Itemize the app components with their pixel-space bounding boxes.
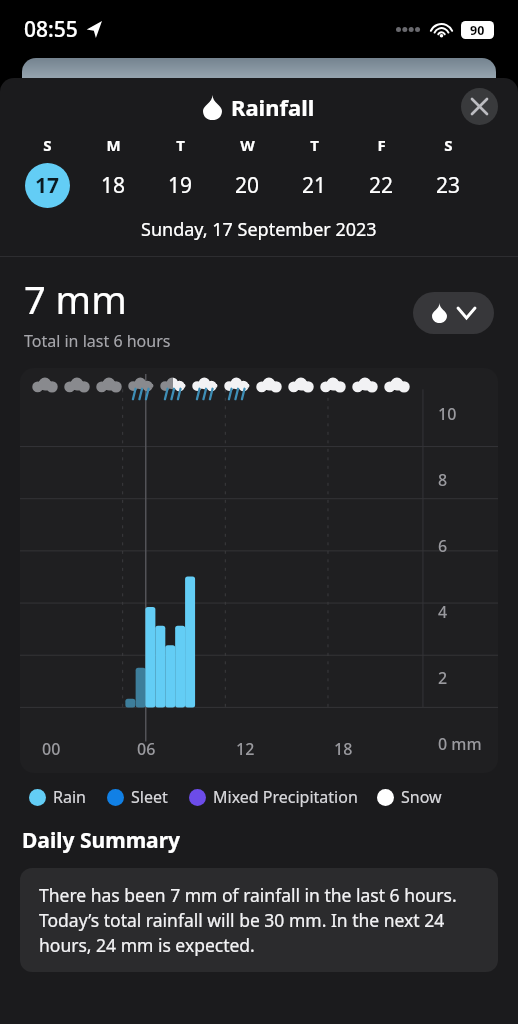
staticText: 8	[438, 469, 448, 491]
staticText: 08:55	[24, 15, 78, 44]
staticText: 2	[438, 667, 448, 689]
staticText: S	[444, 135, 453, 155]
staticText: 23	[436, 171, 461, 200]
staticText: 21	[302, 171, 327, 200]
staticText: Sunday, 17 September 2023	[141, 217, 377, 242]
staticText: F	[377, 135, 386, 155]
staticText: 18	[334, 738, 353, 760]
staticText: Daily Summary	[22, 826, 181, 855]
staticText: 20	[235, 171, 260, 200]
staticText: Sleet	[131, 786, 168, 808]
staticText: 90	[470, 22, 485, 39]
staticText: Total in last 6 hours	[24, 330, 171, 352]
staticText: T	[176, 135, 185, 155]
button[interactable]: Change precipitation type	[413, 292, 494, 334]
staticText: 06	[137, 738, 156, 760]
staticText: W	[240, 135, 255, 155]
button[interactable]: 20	[214, 163, 281, 208]
staticText: 10	[438, 403, 457, 425]
staticText: Snow	[401, 786, 442, 808]
staticText: There has been 7 mm of rainfall in the l…	[39, 883, 479, 957]
button[interactable]: Close	[461, 88, 498, 125]
staticText: 6	[438, 535, 448, 557]
staticText: 17	[35, 171, 60, 200]
staticText: 22	[369, 171, 394, 200]
staticText: 0 mm	[438, 733, 482, 755]
staticText: 18	[101, 171, 126, 200]
staticText: 4	[438, 601, 448, 623]
staticText: Rainfall	[231, 92, 315, 122]
button[interactable]: 18	[80, 163, 147, 208]
button[interactable]: 17	[14, 163, 80, 208]
staticText: Rain	[53, 786, 86, 808]
button[interactable]: 23	[415, 163, 482, 208]
staticText: 12	[236, 738, 255, 760]
staticText: 19	[168, 171, 193, 200]
staticText: S	[43, 135, 52, 155]
button[interactable]: 19	[147, 163, 214, 208]
staticText: Mixed Precipitation	[213, 786, 358, 808]
staticText: T	[310, 135, 319, 155]
staticText: 7 mm	[24, 273, 127, 325]
button[interactable]: 21	[281, 163, 348, 208]
staticText: 00	[42, 738, 61, 760]
staticText: M	[106, 135, 121, 155]
button[interactable]: 22	[348, 163, 415, 208]
